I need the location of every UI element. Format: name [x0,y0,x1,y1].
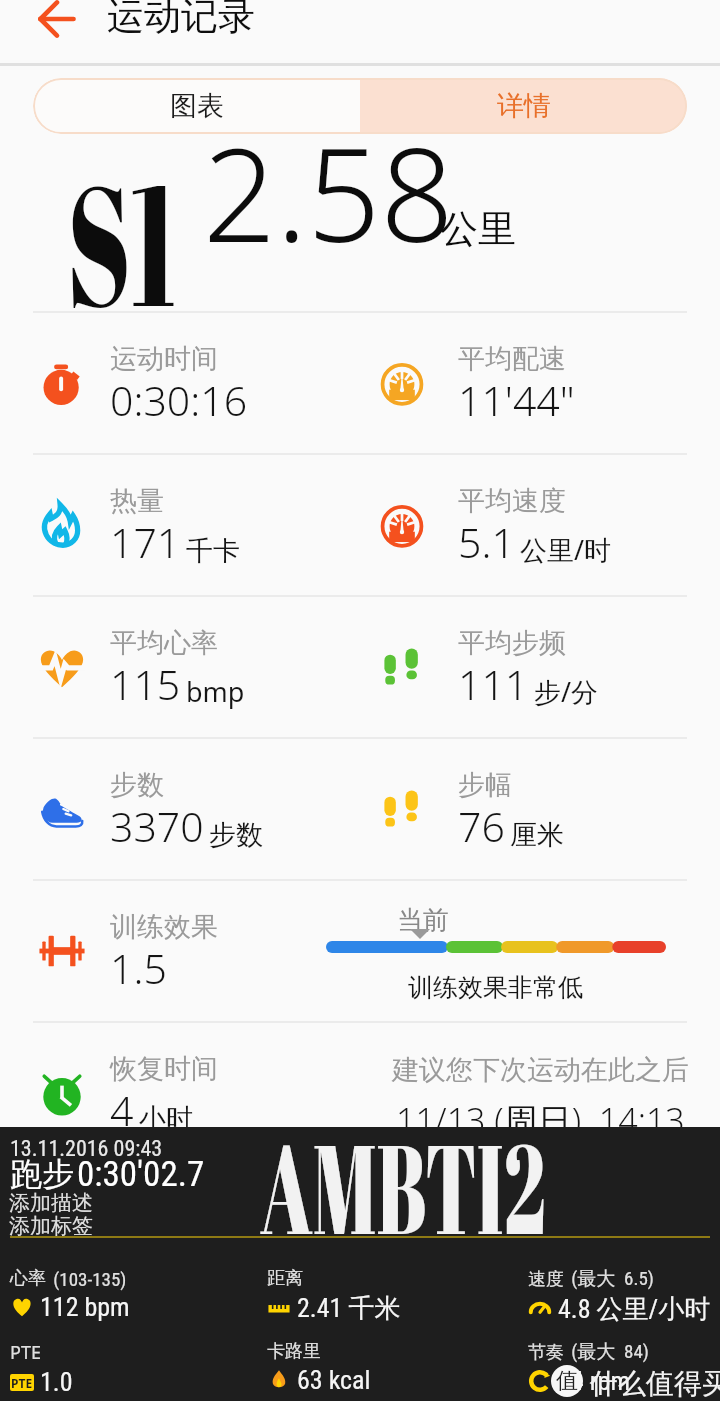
button[interactable]: 详情 [360,78,687,134]
staticText: 3370 [110,798,204,854]
staticText: PTE [10,1340,41,1365]
staticText: 心率 [10,1267,46,1290]
staticText: 添加标签 [9,1213,93,1239]
staticText: 76 [458,798,505,854]
button[interactable]: 步数 [0,739,360,879]
staticText: 平均配速 [458,342,566,376]
staticText: 0:30'02.7 [77,1154,205,1195]
staticText: 恢复时间 [110,1052,218,1086]
button[interactable]: 热量 [0,455,360,595]
staticText: 节奏 [528,1341,564,1364]
button[interactable]: 当前 [360,881,720,1021]
staticText: 4.8 公里/小时 [558,1293,711,1326]
staticText: 热量 [110,484,164,518]
staticText: 距离 [267,1267,303,1290]
staticText: 详情 [497,89,551,123]
staticText: S1 [67,127,177,355]
staticText: 11'44" [458,372,575,428]
staticText: (最大 6.5) [567,1267,654,1291]
staticText: 公里 [440,205,516,253]
staticText: 公里/时 [520,531,612,568]
button[interactable]: 训练效果 [0,881,360,1021]
staticText: 11/13 (周日) 14:13 [396,1097,685,1143]
staticText: 跑步 [10,1154,74,1194]
staticText: 卡路里 [267,1340,321,1363]
staticText: 0:30:16 [110,372,248,428]
button[interactable]: 建议您下次运动在此之后 [360,1053,720,1163]
staticText: 63 kcal [297,1365,371,1395]
staticText: 171 [110,514,181,570]
staticText: PTE [11,1375,33,1391]
staticText: 平均速度 [458,484,566,518]
staticText: 111 [458,656,529,712]
staticText: 1.5 [110,940,167,996]
staticText: 5.1 [458,514,515,570]
staticText: 2.41 千米 [297,1292,401,1325]
staticText: 平均步频 [458,626,566,660]
staticText: 平均心率 [110,626,218,660]
staticText: 训练效果非常低 [408,972,583,1003]
staticText: 图表 [170,89,224,123]
staticText: 添加描述 [9,1190,93,1216]
staticText: (103-135) [49,1268,127,1290]
staticText: 速度 [528,1268,564,1291]
staticText: 训练效果 [110,910,218,944]
staticText: bmp [186,673,245,710]
staticText: 厘米 [510,818,564,852]
staticText: 1.0 [40,1367,73,1397]
staticText: 千卡 [186,534,240,568]
button[interactable]: 恢复时间 [0,1023,360,1163]
staticText: 值 [556,1367,578,1395]
staticText: 运动时间 [110,342,218,376]
button[interactable]: Back [23,0,91,52]
button[interactable]: 平均心率 [0,597,360,737]
staticText: 步/分 [534,673,599,710]
staticText: AMBTI2 [260,1102,546,1271]
button[interactable]: 平均速度 [360,455,720,595]
staticText: 运动记录 [107,0,255,40]
staticText: 115 [110,656,181,712]
button[interactable]: 运动时间 [0,313,360,453]
staticText: 当前 [397,904,449,937]
staticText: 步数 [110,768,164,802]
staticText: 什么值得买 [590,1366,720,1401]
staticText: 112 bpm [40,1292,130,1322]
button[interactable]: 平均配速 [360,313,720,453]
button[interactable]: 平均步频 [360,597,720,737]
staticText: 4 [110,1082,134,1138]
button[interactable]: 图表 [33,78,360,134]
staticText: (最大 84) [567,1340,649,1364]
staticText: 步数 [209,818,263,852]
button[interactable]: 步幅 [360,739,720,879]
staticText: 2.58 [203,105,454,270]
staticText: 建议您下次运动在此之后 [392,1053,689,1087]
staticText: 步幅 [458,768,512,802]
staticText: 小时 [139,1102,193,1136]
staticText: 13.11.2016 09:43 [10,1136,163,1162]
staticText: 84 rpm [558,1366,630,1396]
